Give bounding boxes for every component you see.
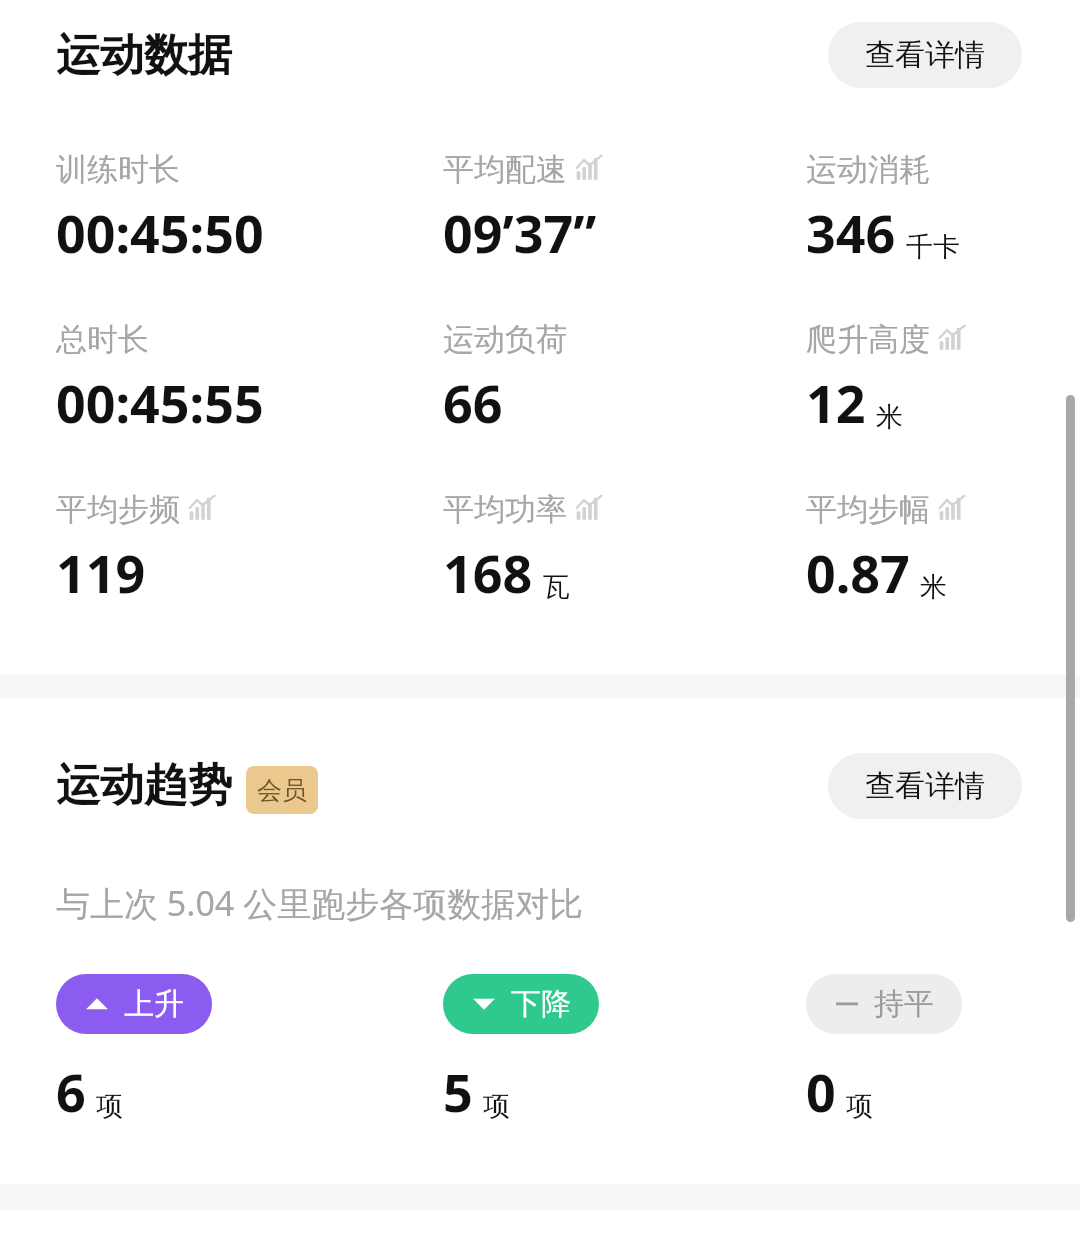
staticText: 平均步频 <box>56 490 180 529</box>
button[interactable]: 6 <box>56 1056 123 1127</box>
staticText: 346 <box>806 197 896 268</box>
staticText: 总时长 <box>56 320 149 359</box>
staticText: 66 <box>443 367 503 438</box>
staticText: 平均配速 <box>443 150 567 189</box>
staticText: 与上次 5.04 公里跑步各项数据对比 <box>56 880 584 926</box>
button[interactable]: 下降 <box>443 974 599 1034</box>
staticText: 米 <box>876 400 903 434</box>
staticText: 00:45:55 <box>56 367 264 438</box>
staticText: 运动负荷 <box>443 320 567 359</box>
staticText: 持平 <box>874 985 934 1023</box>
button[interactable]: 总时长 <box>56 320 264 438</box>
staticText: 运动趋势 <box>56 758 232 813</box>
staticText: 119 <box>56 537 146 608</box>
button[interactable]: 训练时长 <box>56 150 264 268</box>
staticText: 00:45:50 <box>56 197 264 268</box>
staticText: 会员 <box>257 775 307 806</box>
staticText: 爬升高度 <box>806 320 930 359</box>
staticText: 千卡 <box>906 230 960 264</box>
button[interactable]: 平均功率 <box>443 490 603 608</box>
staticText: 运动消耗 <box>806 150 930 189</box>
button[interactable]: 平均步幅 <box>806 490 966 608</box>
button[interactable]: 运动负荷 <box>443 320 567 438</box>
staticText: 168 <box>443 537 533 608</box>
button[interactable]: 运动消耗 <box>806 150 960 268</box>
staticText: 运动数据 <box>56 28 232 83</box>
staticText: 平均步幅 <box>806 490 930 529</box>
staticText: 下降 <box>511 985 571 1023</box>
staticText: 查看详情 <box>865 767 985 805</box>
button[interactable]: 查看详情 <box>828 753 1022 819</box>
staticText: 上升 <box>124 985 184 1023</box>
staticText: 查看详情 <box>865 36 985 74</box>
button[interactable]: 平均步频 <box>56 490 216 608</box>
staticText: 6 <box>56 1056 86 1127</box>
staticText: 12 <box>806 367 866 438</box>
button[interactable]: 平均配速 <box>443 150 603 268</box>
staticText: 平均功率 <box>443 490 567 529</box>
button[interactable]: 0 <box>806 1056 873 1127</box>
button[interactable]: 5 <box>443 1056 510 1127</box>
button[interactable]: 爬升高度 <box>806 320 966 438</box>
staticText: 09’37” <box>443 197 597 268</box>
staticText: 项 <box>483 1089 510 1123</box>
staticText: 米 <box>920 570 947 604</box>
staticText: 0 <box>806 1056 836 1127</box>
staticText: 0.87 <box>806 537 910 608</box>
button[interactable]: 持平 <box>806 974 962 1034</box>
staticText: 训练时长 <box>56 150 180 189</box>
staticText: 项 <box>846 1089 873 1123</box>
button[interactable]: 上升 <box>56 974 212 1034</box>
staticText: 5 <box>443 1056 473 1127</box>
staticText: 瓦 <box>543 570 570 604</box>
button[interactable]: 查看详情 <box>828 22 1022 88</box>
staticText: 项 <box>96 1089 123 1123</box>
